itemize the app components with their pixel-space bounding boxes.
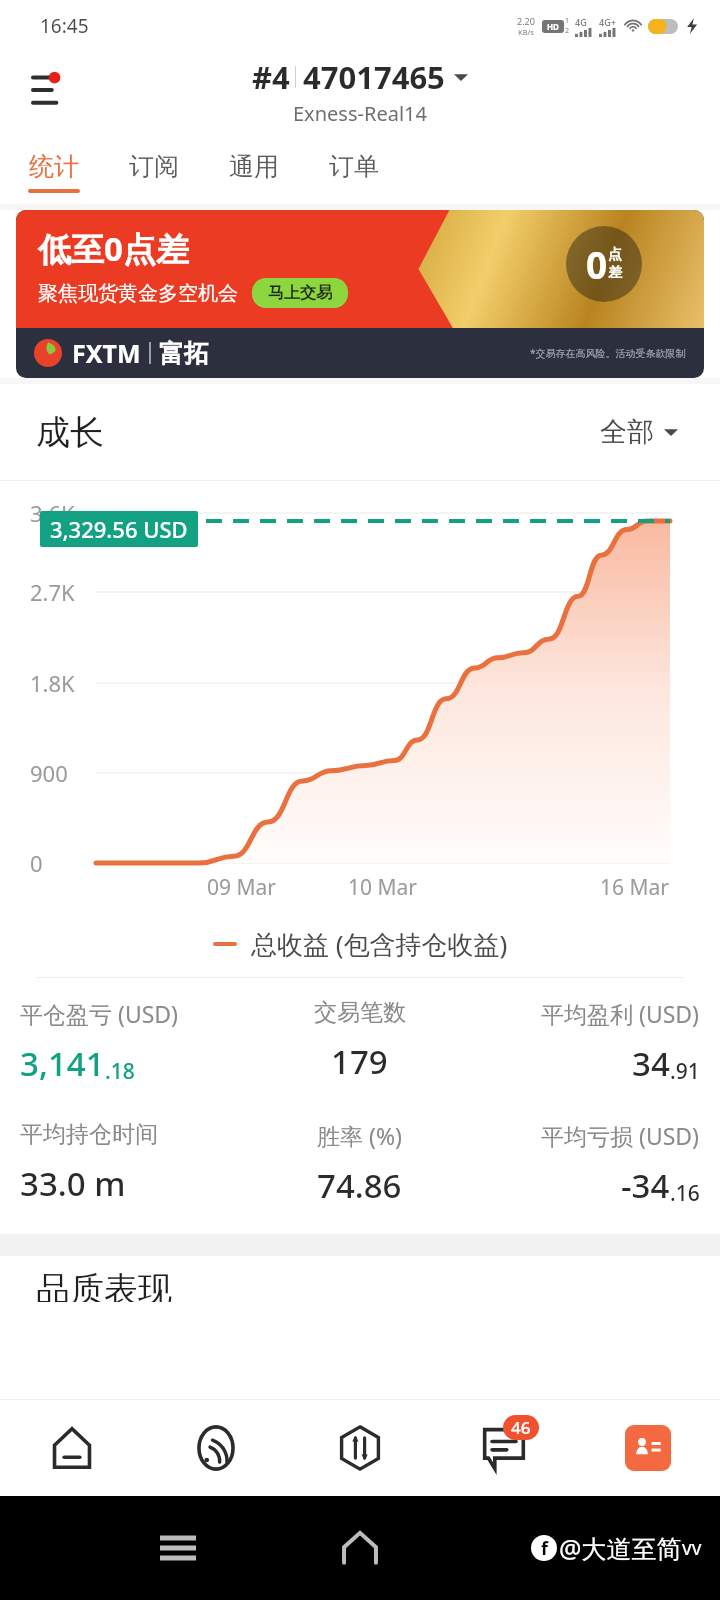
staticText: @大道至简 xyxy=(559,1531,682,1565)
staticText: 总收益 (包含持仓收益) xyxy=(251,926,508,962)
button[interactable]: 低至0点差 xyxy=(16,210,704,378)
button[interactable]: #4 xyxy=(252,56,468,98)
staticText: 1 xyxy=(565,16,570,26)
staticText: 成长 xyxy=(36,411,104,454)
staticText: 低至0点差 xyxy=(38,226,189,271)
staticText: 179 xyxy=(331,1039,388,1084)
staticText: f xyxy=(541,1536,548,1561)
staticText: 33.0 m xyxy=(20,1161,126,1206)
button[interactable]: Feed xyxy=(144,1400,288,1496)
button[interactable]: Account xyxy=(576,1400,720,1496)
staticText: 马上交易 xyxy=(268,283,332,303)
staticText: #4 xyxy=(252,56,290,98)
staticText: 3.6K xyxy=(30,498,75,528)
staticText: 点 xyxy=(608,246,622,264)
staticText: HD xyxy=(547,21,559,32)
staticText: 16 Mar xyxy=(600,873,669,902)
staticText: 订单 xyxy=(329,151,379,182)
staticText: 平均亏损 (USD) xyxy=(541,1120,700,1151)
staticText: 34 xyxy=(632,1041,670,1086)
button[interactable]: 全部 xyxy=(594,409,684,455)
staticText: vv xyxy=(682,1535,702,1561)
other: Home xyxy=(339,1527,381,1569)
staticText: .18 xyxy=(105,1057,135,1086)
staticText: 4G+ xyxy=(599,16,616,28)
staticText: 2.20 xyxy=(517,15,535,27)
button[interactable]: Messages, 46 unread xyxy=(432,1400,576,1496)
staticText: 16:45 xyxy=(40,13,89,39)
staticText: 通用 xyxy=(229,151,279,182)
staticText: KB/s xyxy=(518,27,534,37)
button[interactable]: 订阅 xyxy=(128,147,180,197)
staticText: 1.8K xyxy=(30,668,75,698)
staticText: 平均盈利 (USD) xyxy=(541,998,700,1029)
staticText: FXTM xyxy=(72,336,141,370)
staticText: 47017465 xyxy=(303,56,445,98)
staticText: 3,329.56 USD xyxy=(50,514,188,544)
staticText: -34 xyxy=(621,1163,670,1208)
staticText: 74.86 xyxy=(317,1163,402,1208)
button[interactable]: 统计 xyxy=(28,147,80,197)
staticText: Exness-Real14 xyxy=(293,100,427,127)
staticText: 差 xyxy=(608,264,622,282)
staticText: 10 Mar xyxy=(348,873,417,902)
staticText: 胜率 (%) xyxy=(317,1120,402,1151)
staticText: 平仓盈亏 (USD) xyxy=(20,998,179,1029)
staticText: .16 xyxy=(670,1179,700,1208)
button[interactable]: 通用 xyxy=(228,147,280,197)
staticText: 聚焦现货黄金多空机会 xyxy=(38,281,238,306)
staticText: 09 Mar xyxy=(207,873,276,902)
staticText: 统计 xyxy=(29,151,79,182)
staticText: 平均持仓时间 xyxy=(20,1120,158,1149)
staticText: .91 xyxy=(670,1057,700,1086)
staticText: 46 xyxy=(511,1416,531,1439)
staticText: 2 xyxy=(565,26,570,36)
button[interactable]: Trade xyxy=(288,1400,432,1496)
staticText: 900 xyxy=(30,758,68,788)
other: Recents xyxy=(160,1530,196,1566)
staticText: 全部 xyxy=(600,415,654,449)
staticText: *交易存在高风险。活动受条款限制 xyxy=(530,346,686,360)
staticText: 品质表现 xyxy=(36,1268,172,1302)
staticText: 订阅 xyxy=(129,151,179,182)
staticText: 2.7K xyxy=(30,577,75,607)
button[interactable]: 马上交易 xyxy=(268,283,332,303)
staticText: 富拓 xyxy=(159,338,209,369)
staticText: 3,141 xyxy=(20,1041,105,1086)
button[interactable]: 订单 xyxy=(328,147,380,197)
staticText: 0 xyxy=(30,848,43,878)
staticText: 0 xyxy=(586,239,608,289)
staticText: 4G xyxy=(575,16,587,28)
button[interactable]: Home xyxy=(0,1400,144,1496)
staticText: 交易笔数 xyxy=(314,998,406,1027)
button[interactable]: Menu xyxy=(20,60,80,120)
